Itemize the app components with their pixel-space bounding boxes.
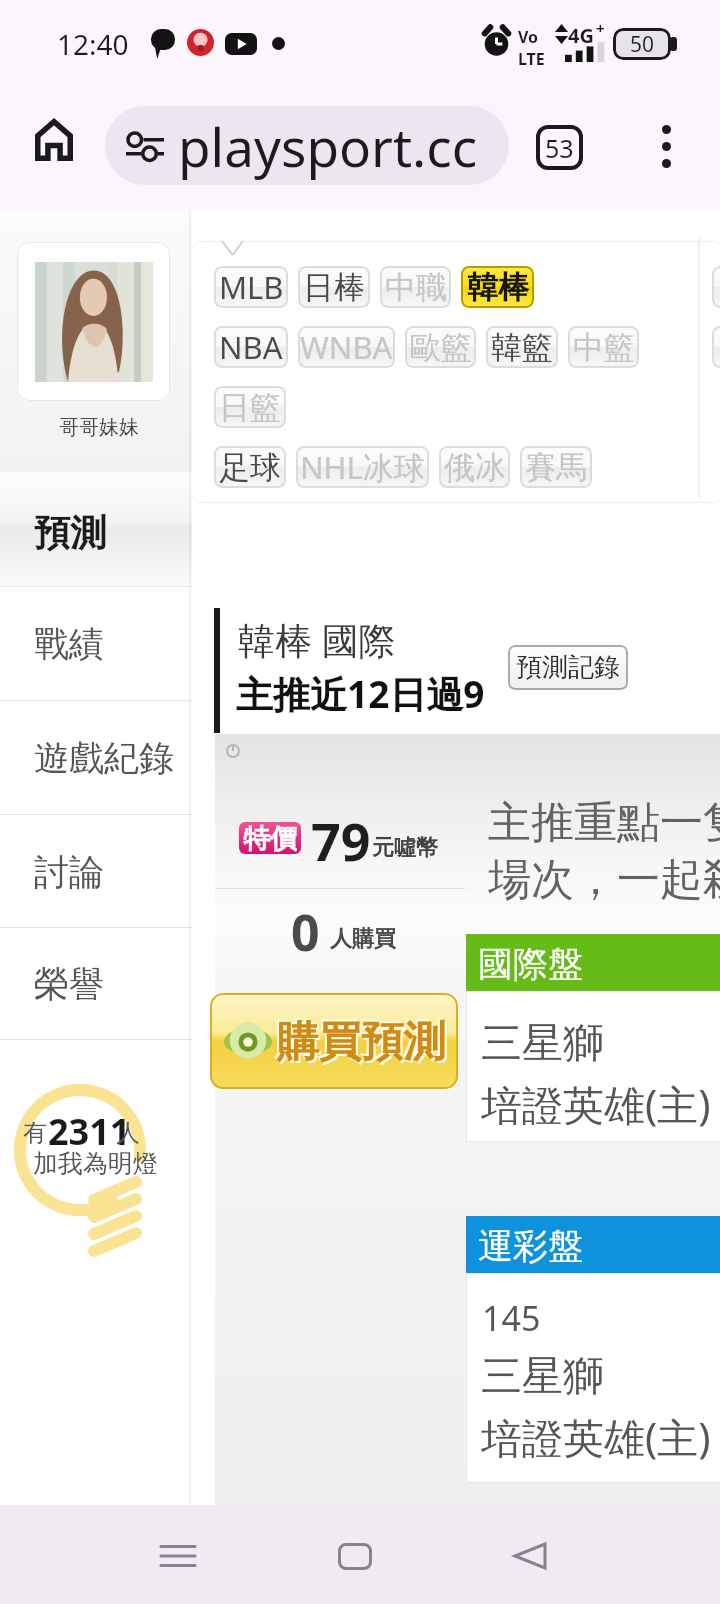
staticText: 加我為明燈 xyxy=(33,1148,158,1179)
button[interactable]: 日棒 xyxy=(298,266,370,308)
staticText: 2311 xyxy=(48,1107,131,1156)
button[interactable]: playsport.cc xyxy=(105,106,509,185)
button[interactable]: 中籃 xyxy=(568,326,639,368)
staticText: 培證英雄(主) xyxy=(481,1076,711,1132)
button[interactable]: 足球 xyxy=(214,446,286,488)
button[interactable]: 韓棒 xyxy=(461,266,534,308)
staticText: 歐籃 xyxy=(410,328,472,367)
staticText: 韓籃 xyxy=(491,328,553,367)
staticText: 足球 xyxy=(219,448,281,487)
staticText: 韓棒 xyxy=(467,268,529,307)
staticText: 運彩盤 xyxy=(478,1224,583,1268)
staticText: 中籃 xyxy=(573,328,635,367)
staticText: 三星獅 xyxy=(481,1351,604,1403)
staticText: 79 xyxy=(311,805,371,876)
staticText: 討論 xyxy=(34,850,104,894)
staticText: 預測記錄 xyxy=(516,651,620,684)
staticText: 特價 xyxy=(243,822,297,854)
staticText: 日籃 xyxy=(219,388,281,427)
staticText: 12:40 xyxy=(57,25,129,63)
button[interactable]: 遊戲紀錄 xyxy=(0,701,192,815)
staticText: 4G xyxy=(568,22,594,49)
staticText: 53 xyxy=(545,131,574,165)
button[interactable]: 討論 xyxy=(0,815,192,928)
staticText: 購買預測 xyxy=(275,1014,443,1067)
button[interactable] xyxy=(712,266,720,308)
button[interactable]: Tabs xyxy=(536,125,583,170)
button[interactable]: WNBA xyxy=(298,326,395,368)
button[interactable]: 購買預測 xyxy=(210,993,458,1089)
staticText: 145 xyxy=(482,1295,541,1341)
button[interactable]: 戰績 xyxy=(0,587,192,701)
staticText: 購買預測 xyxy=(279,1018,447,1071)
staticText: 韓棒 國際 xyxy=(238,614,396,665)
staticText: NHL冰球 xyxy=(300,446,425,488)
button[interactable]: Home xyxy=(18,104,90,176)
staticText: playsport.cc xyxy=(178,110,478,182)
staticText: 榮譽 xyxy=(34,962,104,1006)
staticText: LTE xyxy=(518,48,545,70)
staticText: 主推近12日過9 xyxy=(236,668,485,719)
button[interactable]: 歐籃 xyxy=(405,326,476,368)
staticText: 人 xyxy=(116,1118,140,1148)
staticText: 50 xyxy=(630,30,655,59)
staticText: 元噓幣 xyxy=(372,834,438,862)
staticText: 賽馬 xyxy=(525,448,587,487)
staticText: 國際盤 xyxy=(478,942,583,986)
staticText: 場次，一起殺 xyxy=(488,853,720,907)
staticText: 0 xyxy=(291,898,320,966)
button[interactable]: 俄冰 xyxy=(439,446,510,488)
staticText: 戰績 xyxy=(34,622,104,666)
staticText: 主推重點一隻 xyxy=(488,796,720,850)
staticText: 遊戲紀錄 xyxy=(34,736,174,780)
staticText: Vo xyxy=(518,26,539,48)
button[interactable]: NBA xyxy=(214,326,288,368)
staticText: 俄冰 xyxy=(444,448,506,487)
staticText: 培證英雄(主) xyxy=(481,1409,711,1465)
button[interactable]: MLB xyxy=(214,266,288,308)
button[interactable]: 賽馬 xyxy=(520,446,592,488)
staticText: NBA xyxy=(219,326,283,368)
staticText: 有 xyxy=(23,1118,47,1148)
staticText: WNBA xyxy=(300,326,393,368)
button[interactable]: 韓籃 xyxy=(486,326,558,368)
button[interactable] xyxy=(712,326,720,368)
button[interactable]: 預測記錄 xyxy=(508,645,628,690)
button[interactable]: More options xyxy=(638,118,694,174)
button[interactable]: NHL冰球 xyxy=(296,446,429,488)
staticText: 預測 xyxy=(34,510,106,555)
staticText: 中職 xyxy=(385,268,447,307)
staticText: 三星獅 xyxy=(481,1018,604,1070)
staticText: 日棒 xyxy=(303,268,365,307)
button[interactable]: Recent apps xyxy=(132,1510,224,1602)
button[interactable]: 榮譽 xyxy=(0,928,192,1040)
staticText: MLB xyxy=(219,266,284,308)
staticText: 哥哥妹妹 xyxy=(59,415,139,440)
staticText: 購買預測 xyxy=(277,1016,445,1069)
button[interactable]: 中職 xyxy=(380,266,451,308)
button[interactable]: Home xyxy=(309,1510,401,1602)
staticText: 人購買 xyxy=(330,925,396,953)
staticText: + xyxy=(596,18,605,38)
button[interactable]: Back xyxy=(484,1510,576,1602)
button[interactable]: 日籃 xyxy=(214,386,286,428)
